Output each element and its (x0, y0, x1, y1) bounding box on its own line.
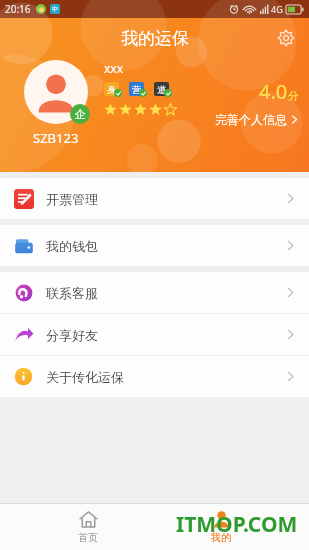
button[interactable]: Settings (271, 23, 301, 53)
button[interactable]: 我的钱包 (0, 225, 309, 266)
staticText: 关于传化运保 (46, 369, 124, 385)
staticText: 4.0 (259, 78, 288, 105)
button[interactable]: 企 (24, 60, 88, 124)
button[interactable]: 完善个人信息 (215, 112, 299, 127)
staticText: SZB123 (33, 129, 79, 147)
staticText: 企 (75, 107, 86, 121)
staticText: 我的运保 (121, 28, 189, 49)
staticText: xxx (104, 60, 124, 76)
staticText: 20:16 (5, 2, 31, 16)
staticText: 开票管理 (46, 191, 98, 207)
staticText: 我的 (211, 531, 231, 544)
button[interactable]: 联系客服 (0, 272, 309, 313)
staticText: 道 (157, 84, 166, 95)
staticText: 身 (107, 84, 116, 95)
staticText: 分享好友 (46, 327, 98, 343)
staticText: 联系客服 (46, 285, 98, 301)
staticText: 我的钱包 (46, 238, 98, 254)
staticText: 中 (52, 5, 58, 13)
button[interactable]: 我的 (176, 506, 266, 548)
staticText: 营 (132, 84, 141, 95)
staticText: 完善个人信息 (215, 112, 287, 127)
staticText: 首页 (78, 531, 98, 544)
button[interactable]: 首页 (43, 506, 133, 548)
staticText: 分 (288, 89, 299, 103)
staticText: 4G (271, 3, 283, 15)
button[interactable]: 分享好友 (0, 314, 309, 355)
staticText: ITMOP.COM (176, 510, 298, 539)
button[interactable]: 关于传化运保 (0, 356, 309, 397)
button[interactable]: 开票管理 (0, 178, 309, 219)
